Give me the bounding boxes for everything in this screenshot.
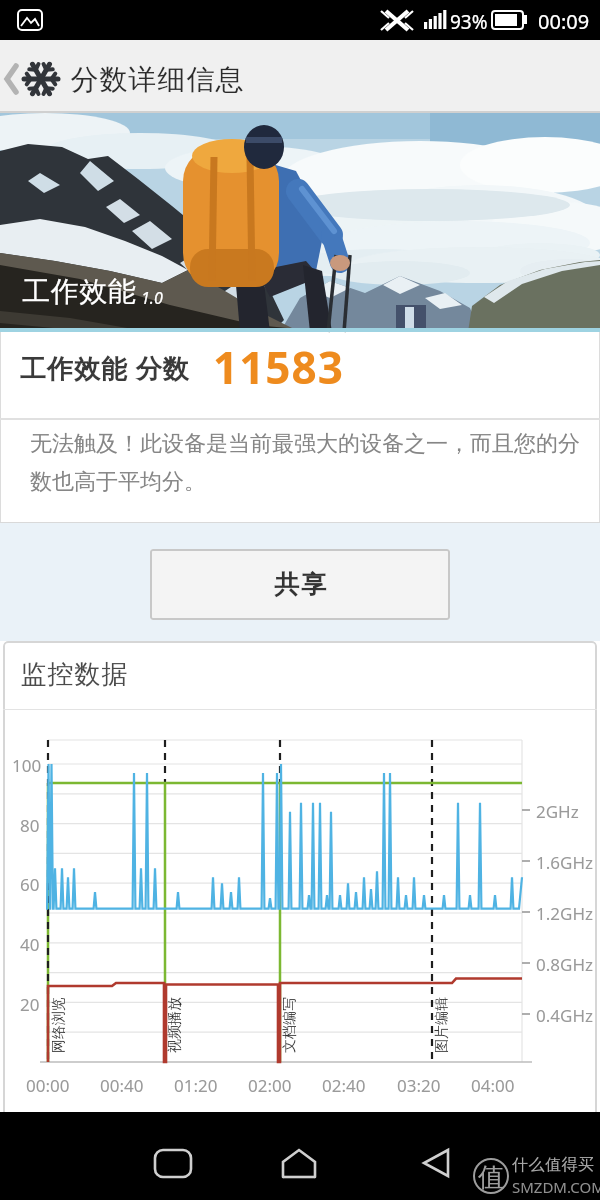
staticText: 2GHz [536, 800, 579, 823]
staticText: 图片编辑 [433, 997, 451, 1053]
staticText: 02:00 [248, 1074, 292, 1097]
staticText: 分数详细信息 [70, 62, 244, 97]
staticText: 视频播放 [166, 997, 184, 1053]
staticText: 什么值得买 [512, 1155, 595, 1175]
staticText: 工作效能 分数 [20, 350, 190, 386]
staticText: 00:09 [538, 8, 590, 35]
staticText: 监控数据 [20, 658, 128, 691]
staticText: 00:40 [100, 1074, 144, 1097]
staticText: 1.6GHz [536, 851, 593, 874]
staticText: 02:40 [322, 1074, 366, 1097]
button[interactable]: 共享 [150, 549, 450, 620]
staticText: 03:20 [397, 1074, 441, 1097]
staticText: 04:00 [471, 1074, 515, 1097]
staticText: 40 [20, 933, 40, 956]
staticText: 0.4GHz [536, 1004, 593, 1027]
button[interactable] [410, 1135, 466, 1191]
staticText: 工作效能 [22, 274, 136, 309]
button[interactable] [140, 1135, 206, 1191]
button[interactable] [0, 40, 62, 112]
staticText: SMZDM.COM [512, 1177, 600, 1197]
staticText: 00:00 [26, 1074, 70, 1097]
staticText: 80 [20, 814, 40, 837]
staticText: 100 [12, 754, 42, 777]
staticText: 网络浏览 [50, 997, 68, 1053]
staticText: 1.0 [141, 287, 163, 309]
staticText: 01:20 [174, 1074, 218, 1097]
staticText: 1.2GHz [536, 902, 593, 925]
staticText: 0.8GHz [536, 953, 593, 976]
staticText: 值 [478, 1161, 504, 1194]
staticText: 共享 [273, 569, 327, 600]
button[interactable] [270, 1135, 330, 1191]
staticText: 60 [20, 873, 40, 896]
staticText: 11583 [213, 337, 344, 397]
staticText: 无法触及！此设备是当前最强大的设备之一，而且您的分 数也高于平均分。 [30, 430, 580, 495]
staticText: 93% [450, 9, 488, 35]
staticText: 文档编写 [281, 997, 299, 1053]
staticText: 20 [20, 993, 40, 1016]
